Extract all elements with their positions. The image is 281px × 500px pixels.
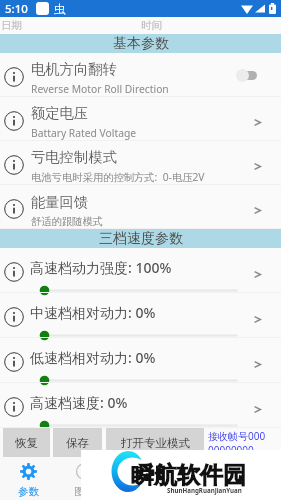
staticText: 恢复 <box>15 436 38 450</box>
button[interactable]: 高速档动力强度: 100% <box>0 248 281 293</box>
staticText: 舒适的跟随模式 <box>31 215 104 228</box>
button[interactable]: 中速档相对动力: 0% <box>0 293 281 338</box>
staticText: Battary Rated Voltage <box>31 126 137 140</box>
staticText: 接收帧号000 <box>208 429 266 443</box>
staticText: 电机方向翻转 <box>31 60 117 78</box>
button[interactable]: 低速档相对动力: 0% <box>0 338 281 383</box>
button[interactable]: 恢复 <box>3 428 50 457</box>
staticText: 亏电控制模式 <box>31 148 117 166</box>
staticText: 记录 <box>130 485 151 498</box>
staticText: 虫 <box>54 2 66 16</box>
staticText: 打开专业模式 <box>121 436 190 450</box>
staticText: 电池亏电时采用的控制方式: 0-电压2V <box>31 170 205 184</box>
button[interactable]: 保存 <box>53 428 102 457</box>
staticText: 参数 <box>18 485 39 498</box>
button[interactable]: 能量回馈 <box>0 185 281 229</box>
staticText: 高速档动力强度: 100% <box>30 258 172 277</box>
staticText: ShunHangRuanJianYuan <box>167 486 242 494</box>
button[interactable]: 亏电控制模式 <box>0 141 281 185</box>
staticText: 中速档相对动力: 0% <box>30 303 156 322</box>
button[interactable]: 我的 <box>224 457 280 500</box>
staticText: 5:10 <box>5 1 28 17</box>
button[interactable]: 打开专业模式 <box>106 428 204 457</box>
staticText: 三档速度参数 <box>99 230 183 248</box>
staticText: 基本参数 <box>113 35 169 53</box>
button[interactable]: 参数 <box>0 457 56 500</box>
staticText: 高速档速度: 0% <box>30 393 128 412</box>
staticText: 低速档相对动力: 0% <box>30 348 156 367</box>
staticText: 00000000 <box>208 443 254 457</box>
button[interactable]: 电机方向翻转 <box>0 53 281 97</box>
button[interactable]: 图表 <box>56 457 112 500</box>
staticText: 设置 <box>186 485 207 498</box>
button[interactable]: 设置 <box>168 457 224 500</box>
button[interactable]: 记录 <box>112 457 168 500</box>
other: Wi-Fi <box>241 4 253 14</box>
staticText: 额定电压 <box>31 104 89 122</box>
button[interactable]: 额定电压 <box>0 97 281 141</box>
staticText: 保存 <box>66 436 89 450</box>
button[interactable]: 高速档速度: 0% <box>0 383 281 428</box>
other: Signal <box>255 4 265 13</box>
staticText: 能量回馈 <box>31 193 89 211</box>
staticText: 时间 <box>141 19 162 32</box>
staticText: 日期 <box>1 19 22 32</box>
other: Battery <box>269 3 276 14</box>
staticText: 瞬航软件园 <box>131 461 246 490</box>
staticText: 图表 <box>74 485 95 498</box>
staticText: Reverse Motor Roll Direction <box>31 82 169 96</box>
staticText: 我的 <box>242 485 263 498</box>
